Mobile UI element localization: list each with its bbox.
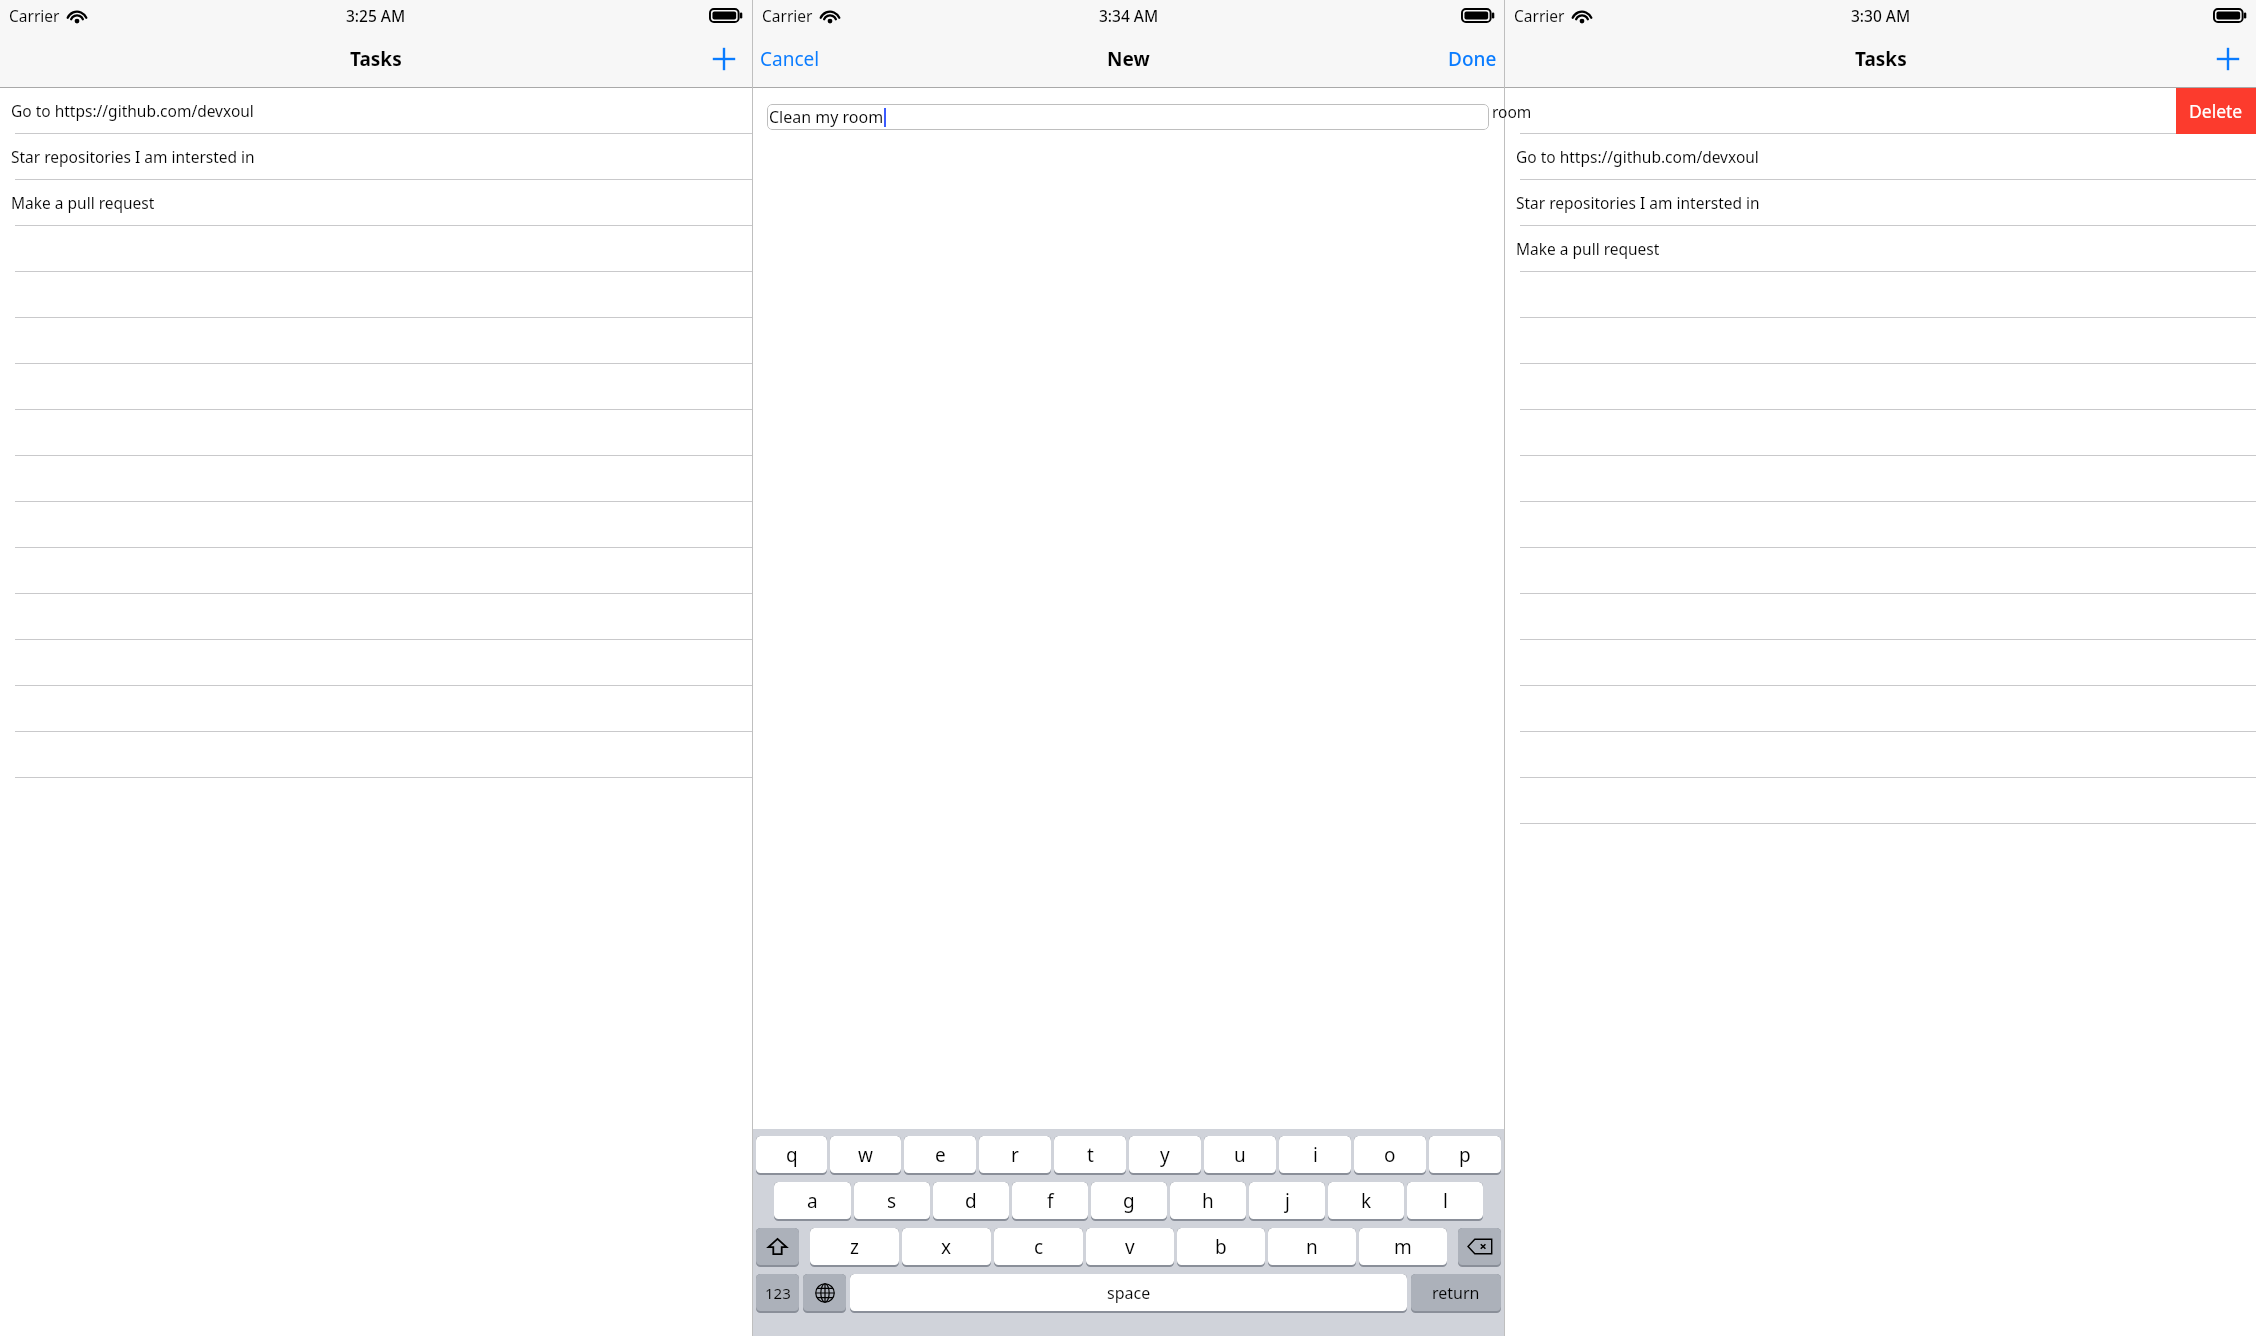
button[interactable] xyxy=(0,272,752,318)
staticText: return xyxy=(1432,1282,1480,1304)
staticText: a xyxy=(807,1188,818,1214)
button[interactable]: v xyxy=(1086,1228,1174,1265)
button[interactable]: a xyxy=(774,1182,851,1219)
staticText: g xyxy=(1123,1188,1135,1214)
button[interactable]: Add task xyxy=(2208,39,2248,79)
staticText: space xyxy=(1107,1282,1151,1304)
staticText: n xyxy=(1306,1234,1318,1260)
button[interactable]: g xyxy=(1091,1182,1167,1219)
button[interactable] xyxy=(0,364,752,410)
staticText: k xyxy=(1361,1188,1372,1214)
staticText: l xyxy=(1443,1188,1448,1214)
staticText: e xyxy=(935,1142,946,1168)
button[interactable]: Star repositories I am intersted in xyxy=(0,134,752,180)
staticText: p xyxy=(1459,1142,1471,1168)
button[interactable] xyxy=(0,502,752,548)
button[interactable] xyxy=(1505,778,2256,824)
staticText: Carrier xyxy=(762,5,813,26)
staticText: x xyxy=(941,1234,952,1260)
button[interactable] xyxy=(1505,640,2256,686)
staticText: i xyxy=(1313,1142,1318,1168)
staticText: m xyxy=(1394,1234,1412,1260)
button[interactable]: 123 xyxy=(756,1274,799,1311)
button[interactable]: q xyxy=(756,1136,827,1173)
button[interactable]: w xyxy=(830,1136,901,1173)
button[interactable] xyxy=(1505,686,2256,732)
button[interactable] xyxy=(1505,272,2256,318)
button[interactable]: Make a pull request xyxy=(0,180,752,226)
button[interactable] xyxy=(1505,456,2256,502)
button[interactable] xyxy=(0,686,752,732)
button[interactable]: y xyxy=(1129,1136,1201,1173)
staticText: room xyxy=(1492,101,1532,122)
button[interactable] xyxy=(1505,502,2256,548)
button[interactable]: space xyxy=(850,1274,1407,1311)
staticText: h xyxy=(1202,1188,1214,1214)
button[interactable]: b xyxy=(1177,1228,1265,1265)
button[interactable] xyxy=(0,732,752,778)
button[interactable]: Key xyxy=(803,1274,846,1311)
button[interactable]: Go to https://github.com/devxoul xyxy=(1505,134,2256,180)
button[interactable]: r xyxy=(979,1136,1051,1173)
button[interactable]: e xyxy=(904,1136,976,1173)
button[interactable]: Delete xyxy=(2176,88,2256,134)
staticText: Star repositories I am intersted in xyxy=(1516,192,1760,213)
button[interactable]: Done xyxy=(1448,46,1497,72)
button[interactable]: Key xyxy=(1458,1228,1501,1265)
button[interactable] xyxy=(1505,594,2256,640)
button[interactable]: t xyxy=(1054,1136,1126,1173)
button[interactable]: Add task xyxy=(704,39,744,79)
button[interactable]: Key xyxy=(756,1228,799,1265)
button[interactable]: f xyxy=(1012,1182,1088,1219)
button[interactable]: s xyxy=(854,1182,930,1219)
staticText: Make a pull request xyxy=(11,192,155,213)
staticText: z xyxy=(850,1234,859,1260)
staticText: New xyxy=(1107,46,1150,72)
button[interactable]: return xyxy=(1411,1274,1501,1311)
staticText: c xyxy=(1034,1234,1044,1260)
staticText: Carrier xyxy=(9,5,60,26)
button[interactable]: m xyxy=(1359,1228,1447,1265)
button[interactable]: n xyxy=(1268,1228,1356,1265)
button[interactable]: d xyxy=(933,1182,1009,1219)
staticText: Clean my room xyxy=(769,106,884,128)
button[interactable]: u xyxy=(1204,1136,1276,1173)
staticText: 3:30 AM xyxy=(1851,5,1911,26)
staticText: 3:34 AM xyxy=(1099,5,1159,26)
button[interactable] xyxy=(1505,364,2256,410)
staticText: r xyxy=(1011,1142,1019,1168)
button[interactable] xyxy=(0,456,752,502)
button[interactable]: Make a pull request xyxy=(1505,226,2256,272)
button[interactable]: j xyxy=(1249,1182,1325,1219)
button[interactable]: Clean my room xyxy=(767,104,1489,130)
button[interactable] xyxy=(1505,548,2256,594)
staticText: s xyxy=(887,1188,897,1214)
button[interactable]: o xyxy=(1354,1136,1426,1173)
button[interactable] xyxy=(0,594,752,640)
button[interactable]: z xyxy=(810,1228,899,1265)
staticText: Go to https://github.com/devxoul xyxy=(11,100,254,121)
staticText: Star repositories I am intersted in xyxy=(11,146,255,167)
staticText: 123 xyxy=(765,1283,791,1303)
button[interactable]: p xyxy=(1429,1136,1501,1173)
button[interactable]: Cancel xyxy=(760,46,820,72)
button[interactable]: l xyxy=(1407,1182,1483,1219)
button[interactable] xyxy=(0,226,752,272)
button[interactable]: c xyxy=(994,1228,1083,1265)
staticText: Make a pull request xyxy=(1516,238,1660,259)
staticText: Tasks xyxy=(1855,46,1907,72)
button[interactable] xyxy=(0,318,752,364)
button[interactable]: Star repositories I am intersted in xyxy=(1505,180,2256,226)
button[interactable]: x xyxy=(902,1228,991,1265)
button[interactable] xyxy=(1505,318,2256,364)
button[interactable]: h xyxy=(1170,1182,1246,1219)
button[interactable]: k xyxy=(1328,1182,1404,1219)
button[interactable]: i xyxy=(1279,1136,1351,1173)
button[interactable] xyxy=(0,640,752,686)
button[interactable]: Go to https://github.com/devxoul xyxy=(0,88,752,134)
button[interactable] xyxy=(0,548,752,594)
button[interactable] xyxy=(1505,410,2256,456)
button[interactable] xyxy=(1505,732,2256,778)
staticText: Go to https://github.com/devxoul xyxy=(1516,146,1759,167)
button[interactable] xyxy=(0,410,752,456)
